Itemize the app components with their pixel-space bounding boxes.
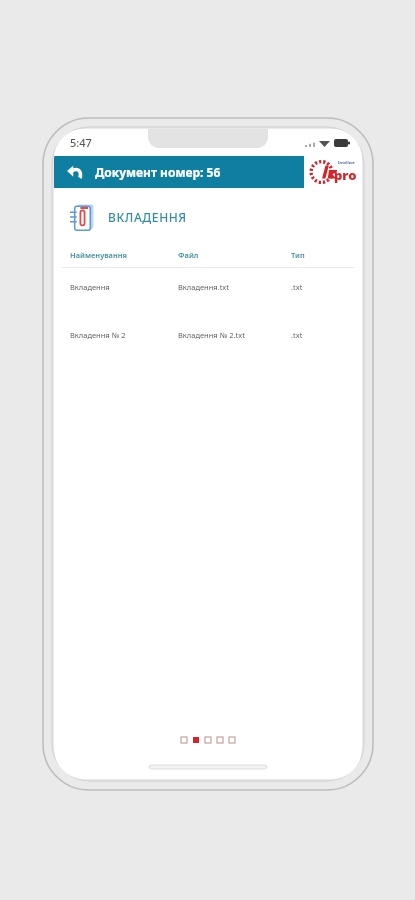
button[interactable] bbox=[181, 737, 187, 743]
staticText: 5:47 bbox=[70, 135, 92, 150]
staticText: Тип bbox=[291, 250, 348, 260]
other: Back bbox=[64, 161, 86, 183]
staticText: Вкладення.txt bbox=[178, 282, 291, 292]
button[interactable]: Вкладення № 2 bbox=[54, 316, 362, 344]
button[interactable] bbox=[205, 737, 211, 743]
button[interactable]: ВКЛАДЕННЯ bbox=[70, 202, 362, 232]
staticText: Файл bbox=[178, 250, 291, 260]
button[interactable] bbox=[217, 737, 223, 743]
staticText: .txt bbox=[291, 282, 348, 292]
button[interactable]: Вкладення bbox=[54, 268, 362, 296]
staticText: Вкладення № 2.txt bbox=[178, 330, 291, 340]
staticText: ВКЛАДЕННЯ bbox=[108, 209, 187, 225]
staticText: Вкладення bbox=[70, 282, 178, 292]
button[interactable]: Back bbox=[54, 156, 304, 188]
staticText: Intellect bbox=[338, 160, 355, 165]
staticText: Вкладення № 2 bbox=[70, 330, 178, 340]
staticText: pro bbox=[334, 166, 357, 184]
staticText: Найменування bbox=[70, 250, 178, 260]
staticText: .txt bbox=[291, 330, 348, 340]
button[interactable] bbox=[229, 737, 235, 743]
staticText: Документ номер: 56 bbox=[95, 164, 221, 180]
other: IS pro logo bbox=[304, 156, 362, 188]
